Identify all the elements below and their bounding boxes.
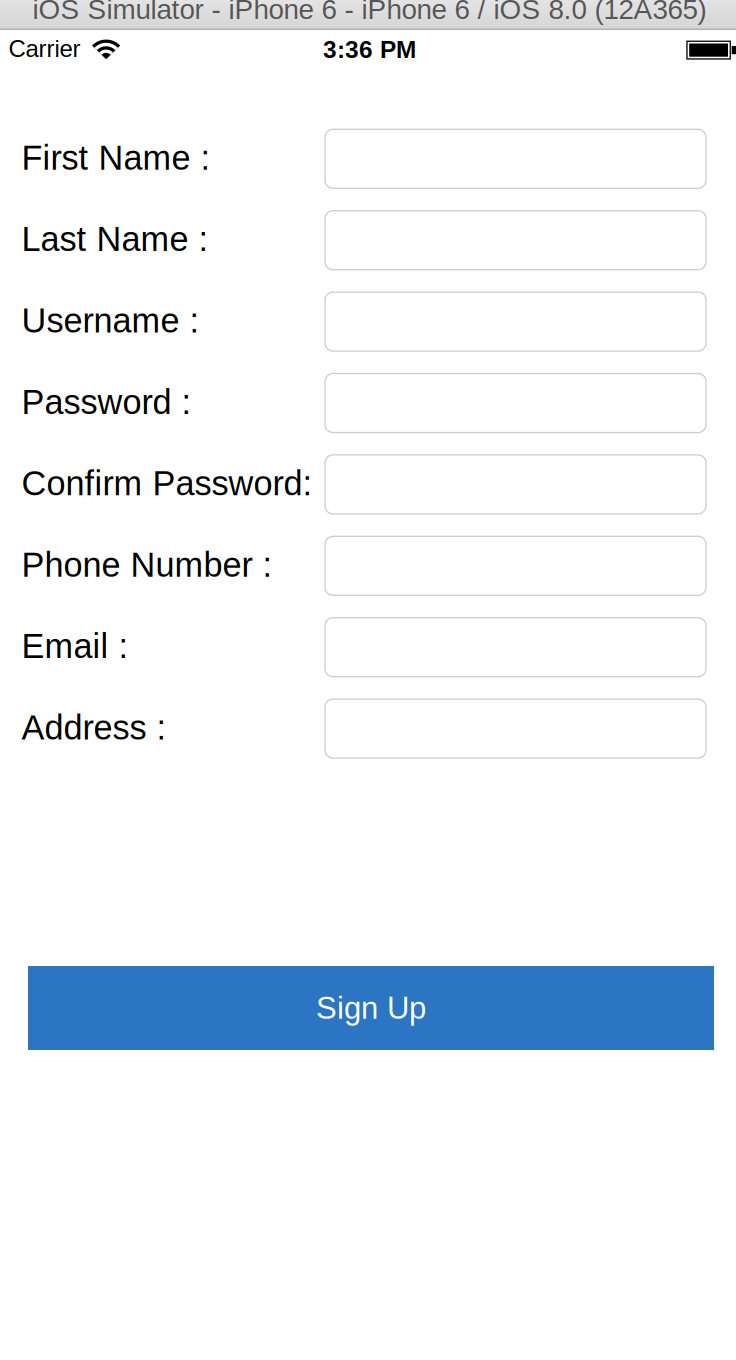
staticText: Carrier [8,35,80,62]
staticText: Email : [21,627,128,665]
button[interactable]: Password : [325,373,706,432]
button[interactable]: Last Name : [325,211,706,270]
staticText: iOS Simulator - iPhone 6 - iPhone 6 / iO… [32,0,706,25]
button[interactable]: Address : [325,699,706,758]
button[interactable]: Username : [325,292,706,351]
staticText: First Name : [21,139,210,177]
staticText: Address : [21,708,166,747]
staticText: Sign Up [316,991,426,1025]
staticText: Password : [21,383,191,421]
staticText: 3:36 PM [323,36,416,63]
staticText: Confirm Password: [21,464,312,503]
button[interactable]: Phone Number : [325,536,706,595]
button[interactable]: Sign Up [28,966,714,1050]
staticText: Last Name : [21,220,208,258]
button[interactable]: Email : [325,618,706,677]
staticText: Phone Number : [21,546,272,584]
button[interactable]: First Name : [325,129,706,188]
button[interactable]: Confirm Password: [325,455,706,514]
staticText: Username : [21,301,199,340]
